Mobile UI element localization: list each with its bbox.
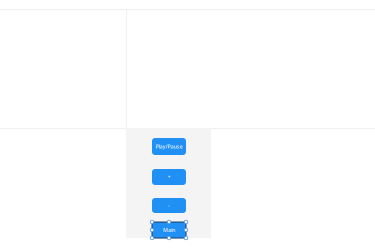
- button[interactable]: Decrease: [152, 198, 186, 213]
- button[interactable]: Play/Pause: [152, 138, 186, 155]
- staticText: Main: [163, 226, 175, 234]
- button[interactable]: Main: [152, 222, 186, 238]
- staticText: Play/Pause: [155, 143, 182, 150]
- staticText: +: [167, 173, 170, 181]
- button[interactable]: Increase: [152, 169, 186, 185]
- staticText: -: [168, 202, 170, 209]
